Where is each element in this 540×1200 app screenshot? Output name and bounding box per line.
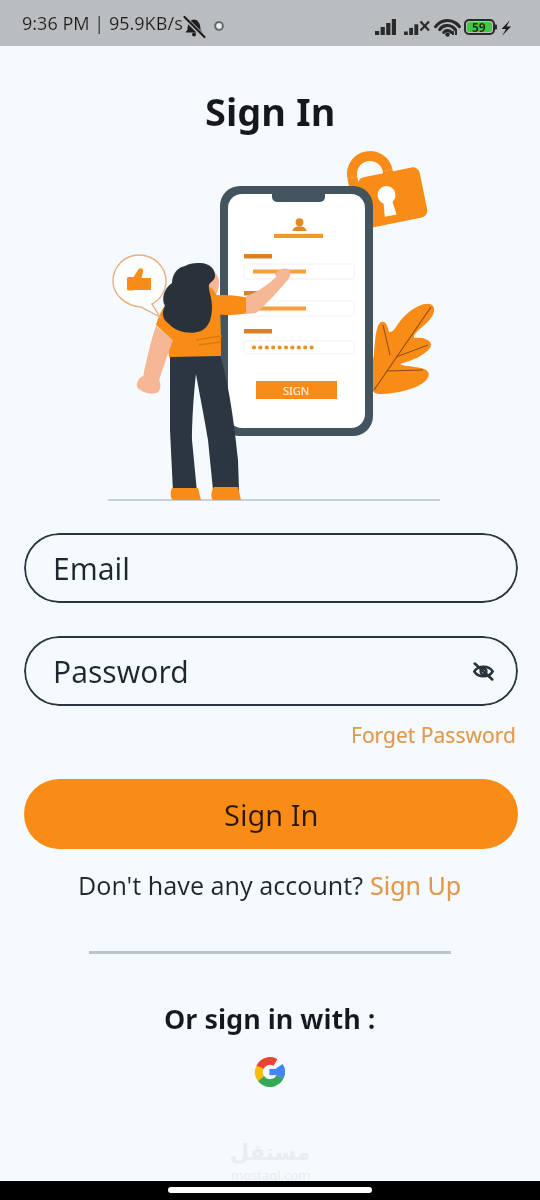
staticText: Sign Up: [370, 868, 462, 902]
button[interactable]: Sign In: [24, 779, 518, 849]
staticText: mostaql.com: [231, 1166, 311, 1184]
staticText: مستقل: [230, 1140, 311, 1166]
staticText: 9:36 PM | 95.9KB/s: [22, 11, 183, 36]
button[interactable]: Toggle password visibility: [466, 654, 500, 688]
staticText: Forget Password: [351, 721, 516, 750]
staticText: Sign In: [224, 795, 319, 834]
staticText: SIGN: [283, 383, 310, 398]
staticText: Or sign in with :: [164, 1000, 376, 1037]
staticText: 59: [472, 19, 486, 35]
button[interactable]: Password: [24, 636, 518, 706]
staticText: Sign In: [205, 85, 336, 137]
staticText: Don't have any account?: [78, 868, 370, 902]
button[interactable]: Sign in with Google: [254, 1056, 286, 1088]
staticText: Password: [53, 651, 189, 692]
button[interactable]: Sign Up: [370, 868, 462, 902]
staticText: Email: [53, 548, 131, 589]
button[interactable]: Email: [24, 533, 518, 603]
button[interactable]: Forget Password: [351, 718, 540, 750]
